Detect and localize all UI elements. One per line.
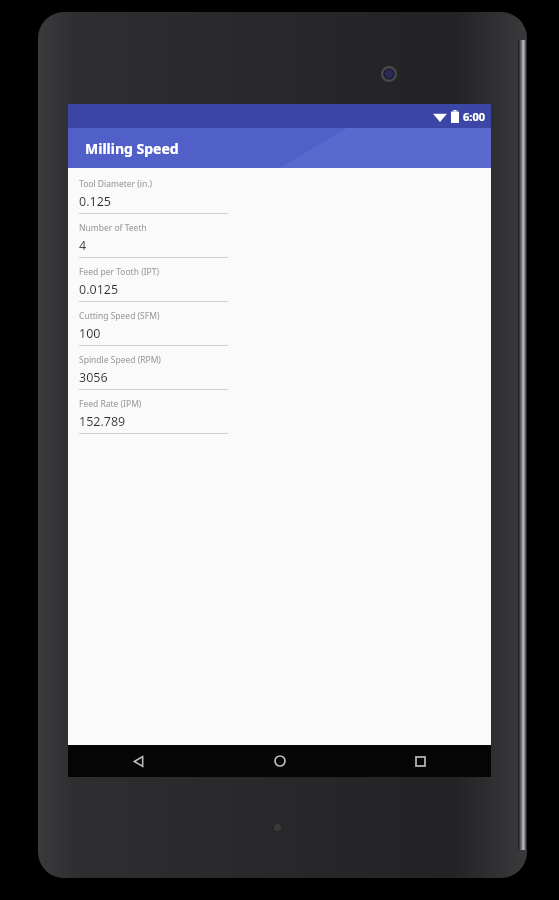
staticText: Cutting Speed (SFM) — [79, 310, 160, 322]
button[interactable]: Number of Teeth — [79, 222, 228, 266]
staticText: Spindle Speed (RPM) — [79, 354, 161, 366]
staticText: Feed Rate (IPM) — [79, 398, 142, 410]
button[interactable]: Tool Diameter (in.) — [79, 178, 228, 222]
staticText: 0.125 — [79, 193, 111, 210]
staticText: 4 — [79, 237, 87, 254]
button[interactable]: Spindle Speed (RPM) — [79, 354, 228, 398]
staticText: 152.789 — [79, 413, 126, 430]
button[interactable]: Home — [209, 745, 350, 777]
staticText: 0.0125 — [79, 281, 119, 298]
staticText: Milling Speed — [85, 139, 179, 158]
button[interactable]: Recent apps — [350, 745, 491, 777]
staticText: 6:00 — [463, 109, 485, 124]
button[interactable]: Feed per Tooth (IPT) — [79, 266, 228, 310]
staticText: Number of Teeth — [79, 222, 147, 234]
staticText: Tool Diameter (in.) — [79, 178, 153, 190]
staticText: 3056 — [79, 369, 108, 386]
button[interactable]: Back — [68, 745, 209, 777]
staticText: 100 — [79, 325, 101, 342]
button[interactable]: Cutting Speed (SFM) — [79, 310, 228, 354]
staticText: Feed per Tooth (IPT) — [79, 266, 159, 278]
button[interactable]: Feed Rate (IPM) — [79, 398, 228, 442]
